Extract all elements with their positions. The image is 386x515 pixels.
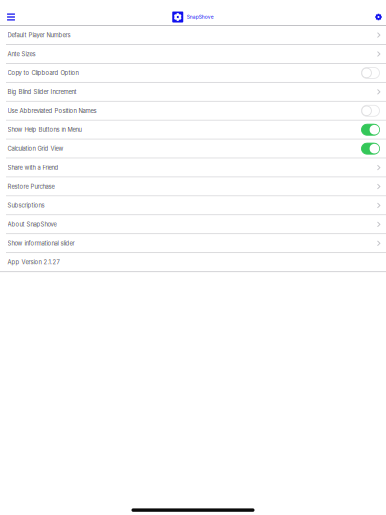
button[interactable]: About SnapShove <box>0 215 386 233</box>
button[interactable]: App Version 2.1.27 <box>0 253 386 271</box>
staticText: Ante Sizes <box>7 50 35 57</box>
staticText: App Version 2.1.27 <box>7 259 59 266</box>
staticText: Big Blind Slider Increment <box>7 88 76 95</box>
staticText: Share with a Friend <box>7 164 58 171</box>
button[interactable]: Show informational slider <box>0 234 386 252</box>
staticText: Default Player Numbers <box>7 31 70 39</box>
staticText: Calculation Grid View <box>7 145 63 152</box>
staticText: Subscriptions <box>7 202 44 209</box>
button[interactable]: Settings <box>372 9 385 25</box>
staticText: About SnapShove <box>7 221 56 228</box>
button[interactable]: Share with a Friend <box>0 158 386 177</box>
staticText: SnapShove <box>187 14 214 20</box>
button[interactable]: Use Abbreviated Position Names <box>0 102 386 120</box>
staticText: Show informational slider <box>7 240 74 247</box>
button[interactable]: Default Player Numbers <box>0 26 386 44</box>
button[interactable]: Copy to Clipboard Option <box>0 64 386 82</box>
button[interactable]: Restore Purchase <box>0 177 386 195</box>
button[interactable]: Big Blind Slider Increment <box>0 83 386 101</box>
button[interactable]: Subscriptions <box>0 196 386 214</box>
staticText: Use Abbreviated Position Names <box>7 107 96 114</box>
staticText: Restore Purchase <box>7 183 54 190</box>
staticText: Copy to Clipboard Option <box>7 69 78 76</box>
button[interactable]: Show Help Buttons in Menu <box>0 121 386 139</box>
button[interactable]: Menu <box>1 9 21 25</box>
button[interactable]: Ante Sizes <box>0 45 386 63</box>
button[interactable]: Calculation Grid View <box>0 140 386 158</box>
staticText: Show Help Buttons in Menu <box>7 126 81 133</box>
